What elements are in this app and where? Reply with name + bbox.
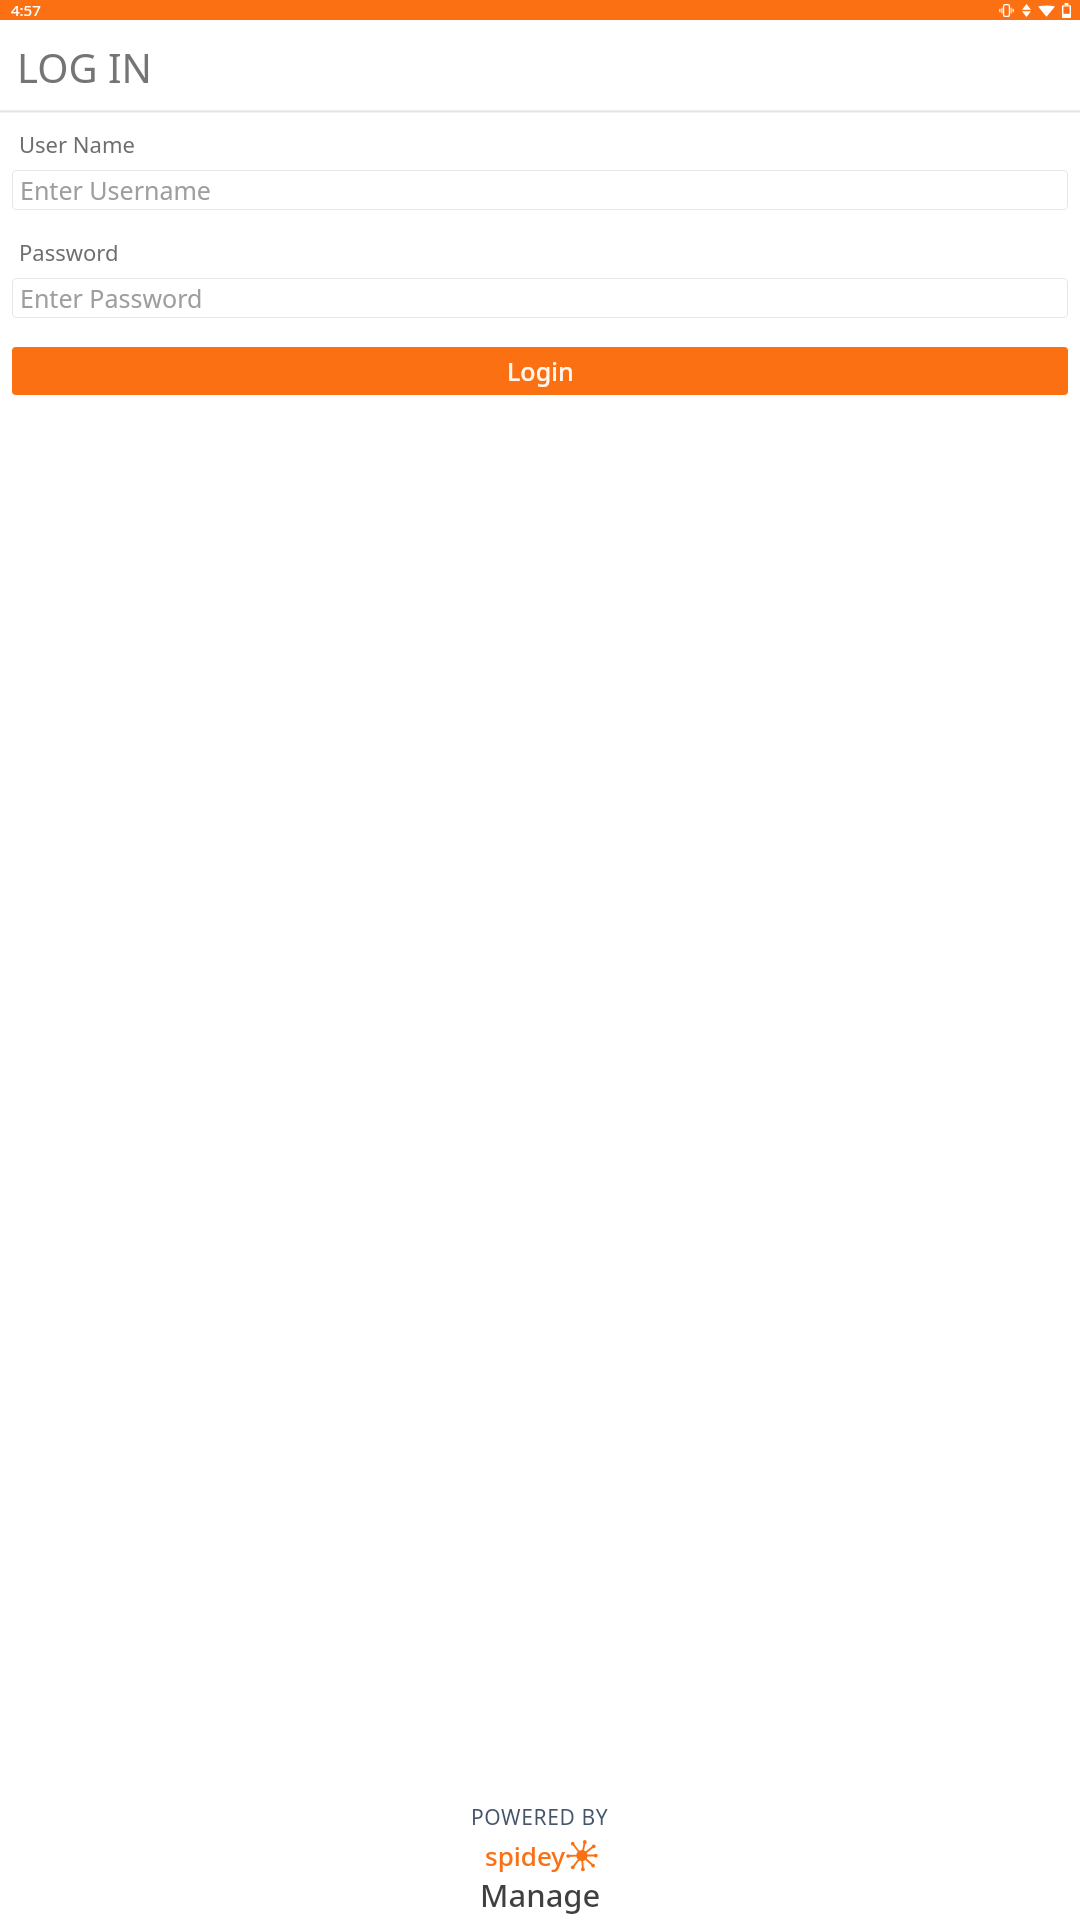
- staticText: Manage: [480, 1874, 601, 1916]
- button[interactable]: Enter Username: [12, 170, 1068, 210]
- button[interactable]: Enter Password: [12, 278, 1068, 318]
- button[interactable]: Login: [12, 347, 1068, 395]
- staticText: LOG IN: [17, 40, 152, 94]
- staticText: Enter Password: [20, 281, 203, 315]
- staticText: 4:57: [11, 0, 41, 20]
- staticText: POWERED BY: [471, 1803, 609, 1832]
- staticText: User Name: [19, 129, 135, 159]
- staticText: Enter Username: [20, 173, 211, 207]
- other: Spidey logo: [570, 1842, 596, 1868]
- staticText: Login: [507, 354, 574, 388]
- staticText: spidey: [485, 1838, 566, 1873]
- staticText: Password: [19, 237, 119, 267]
